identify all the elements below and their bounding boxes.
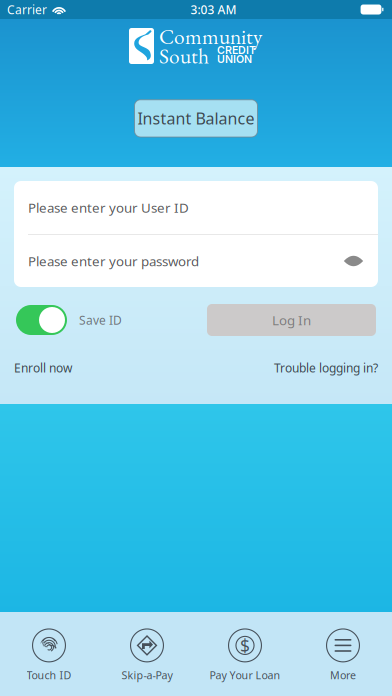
staticText: CREDIT	[217, 43, 256, 56]
staticText: Instant Balance	[137, 108, 254, 129]
button[interactable]: Log In	[207, 304, 376, 336]
staticText: Save ID	[79, 312, 122, 328]
staticText: Trouble logging in?	[274, 360, 378, 376]
staticText: South	[159, 42, 209, 70]
button[interactable]: Enroll now	[14, 360, 72, 376]
button[interactable]: Save ID	[16, 305, 122, 335]
staticText: $	[240, 634, 250, 657]
staticText: Community	[159, 23, 262, 50]
button[interactable]: $	[196, 618, 294, 690]
button[interactable]: Touch ID	[0, 618, 98, 690]
staticText: Enroll now	[14, 360, 72, 376]
staticText: UNION	[217, 52, 252, 65]
button[interactable]: Instant Balance	[134, 100, 257, 137]
staticText: Carrier	[7, 1, 47, 17]
button[interactable]: More	[294, 618, 392, 690]
staticText: Touch ID	[26, 668, 71, 682]
button[interactable]: Trouble logging in?	[274, 360, 378, 376]
staticText: 3:03 AM	[190, 1, 236, 17]
staticText: Please enter your User ID	[28, 199, 189, 216]
button[interactable]: Skip-a-Pay	[98, 618, 196, 690]
staticText: Please enter your password	[28, 252, 199, 270]
staticText: Skip-a-Pay	[121, 668, 172, 682]
staticText: More	[330, 668, 356, 682]
staticText: Pay Your Loan	[209, 668, 280, 682]
staticText: Log In	[272, 311, 311, 329]
